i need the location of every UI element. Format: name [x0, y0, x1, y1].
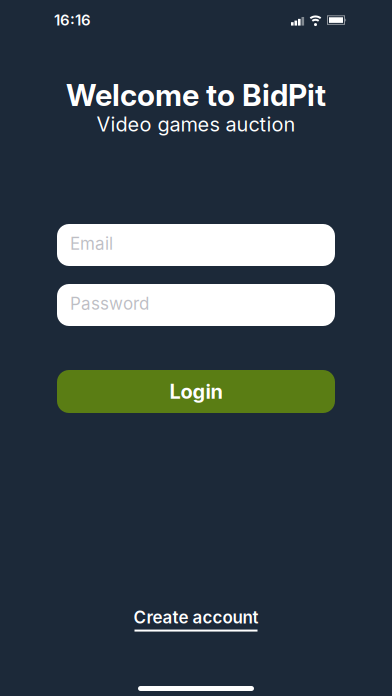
button[interactable]: Create account [133, 607, 258, 632]
staticText: Login [169, 379, 222, 404]
button[interactable]: Login [57, 370, 335, 413]
staticText: Email [70, 233, 113, 254]
secureTextField[interactable]: Password [70, 290, 335, 320]
staticText: Create account [133, 607, 258, 628]
staticText: 16:16 [54, 11, 91, 29]
staticText: Email [70, 230, 129, 260]
staticText: Video games auction [96, 112, 295, 136]
textField[interactable]: Email [70, 230, 335, 260]
staticText: Welcome to BidPit [66, 77, 326, 113]
staticText: Password [70, 290, 174, 320]
staticText: Password [70, 293, 149, 314]
